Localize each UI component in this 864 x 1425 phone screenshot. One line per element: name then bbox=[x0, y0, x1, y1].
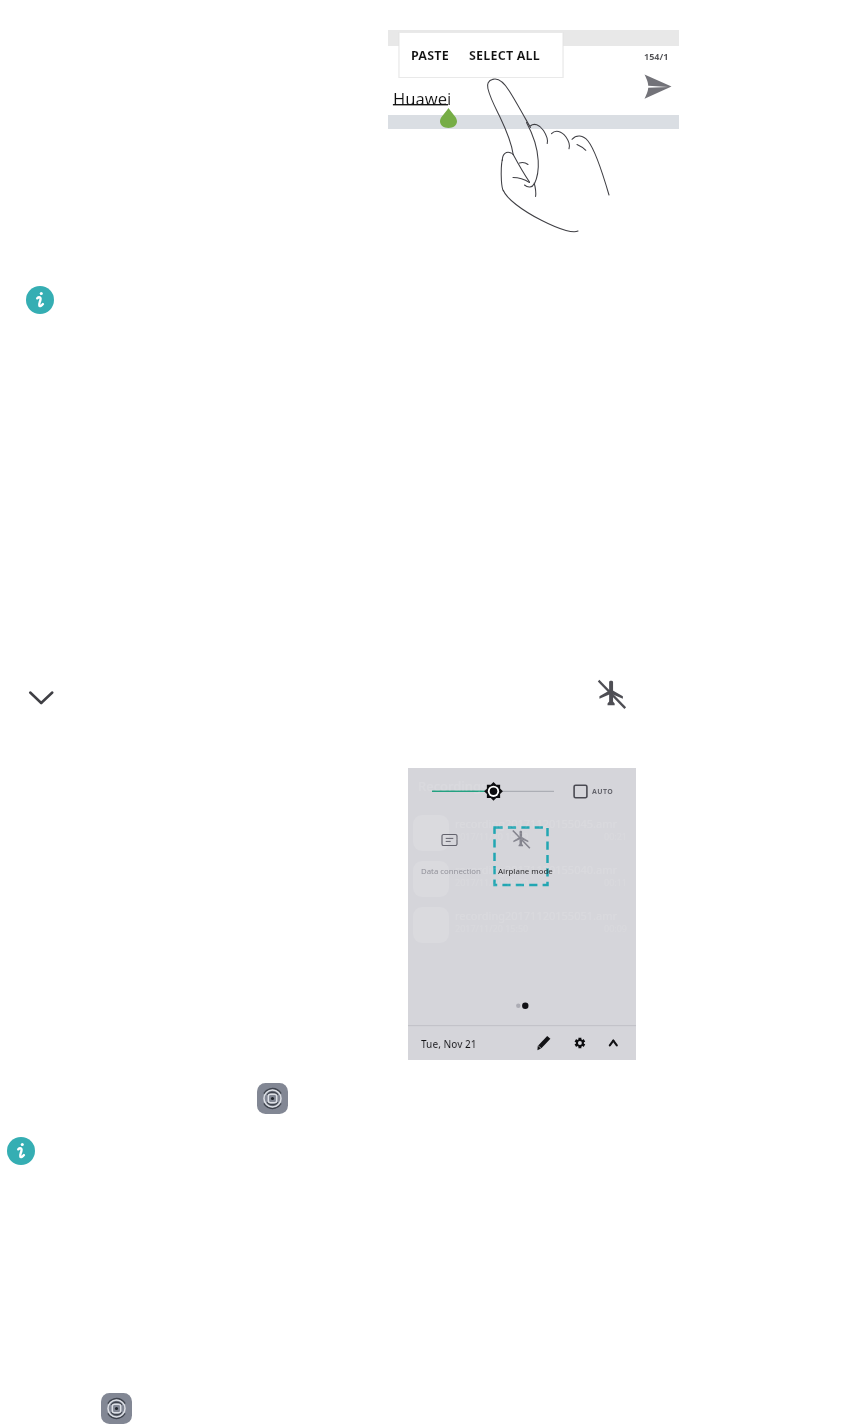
button[interactable]: PASTE bbox=[400, 33, 459, 77]
button[interactable]: Collapse bbox=[601, 1032, 625, 1056]
staticText: recording20171120155045.amr bbox=[455, 816, 617, 831]
staticText: 2017/11/20 15:50 bbox=[455, 830, 529, 842]
button[interactable]: Airplane mode off bbox=[596, 680, 626, 710]
button[interactable]: Settings bbox=[568, 1032, 592, 1056]
button[interactable]: Auto brightness bbox=[572, 782, 614, 802]
staticText: 154/1 bbox=[644, 50, 669, 62]
staticText: recording20171120155040.amr bbox=[455, 862, 617, 877]
button[interactable]: Edit bbox=[533, 1032, 557, 1056]
button[interactable]: Recorder app bbox=[257, 1083, 289, 1115]
button[interactable]: Information bbox=[7, 1137, 35, 1165]
staticText: 2017/11/20 15:50 bbox=[455, 876, 529, 888]
staticText: Airplane mode bbox=[498, 866, 553, 877]
button[interactable]: Airplane mode bbox=[494, 827, 548, 885]
button[interactable]: Mute bbox=[413, 815, 473, 875]
button[interactable]: Send bbox=[638, 68, 678, 106]
staticText: Data connection bbox=[421, 866, 481, 877]
staticText: AUTO bbox=[592, 787, 614, 797]
button[interactable]: Recorder app bbox=[101, 1393, 133, 1425]
button[interactable]: Expand bbox=[26, 686, 56, 710]
staticText: SELECT ALL bbox=[469, 47, 540, 64]
button[interactable]: Data connection bbox=[413, 861, 473, 921]
button[interactable]: SELECT ALL bbox=[453, 33, 556, 77]
staticText: Huawei bbox=[393, 87, 452, 109]
staticText: PASTE bbox=[411, 47, 449, 64]
staticText: Recordings bbox=[418, 777, 488, 795]
staticText: Tue, Nov 21 bbox=[421, 1037, 477, 1051]
button[interactable]: Information bbox=[26, 286, 54, 314]
